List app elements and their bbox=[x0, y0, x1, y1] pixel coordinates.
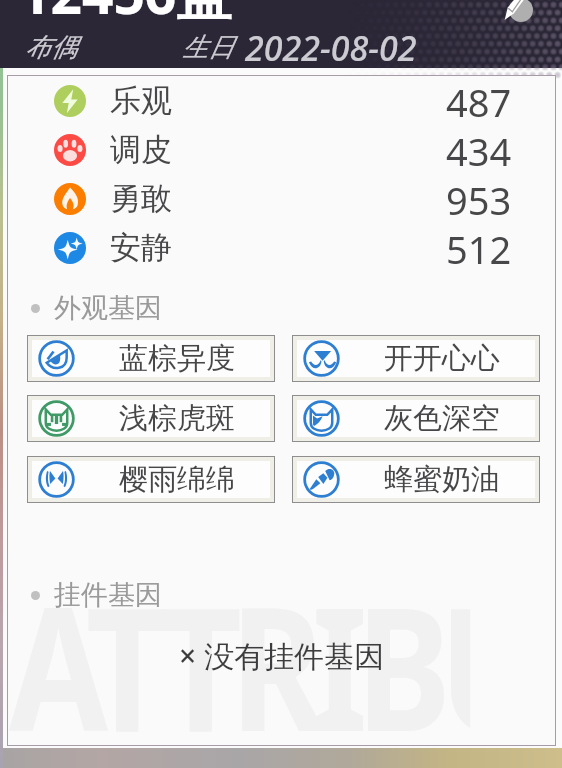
staticText: 外观基因 bbox=[54, 291, 162, 325]
staticText: 953 bbox=[446, 174, 512, 223]
button[interactable]: 樱雨绵绵 bbox=[32, 461, 270, 498]
staticText: 434 bbox=[446, 125, 512, 174]
staticText: 生日 bbox=[182, 31, 234, 64]
staticText: 调皮 bbox=[110, 130, 172, 169]
button[interactable]: 灰色深空 bbox=[297, 400, 535, 437]
staticText: 蜂蜜奶油 bbox=[384, 461, 500, 498]
button[interactable]: Edit bbox=[509, 0, 533, 22]
staticText: ATTRIBUTE bbox=[9, 549, 470, 768]
button[interactable]: 乐观 bbox=[7, 76, 556, 125]
button[interactable]: 蓝棕异度 bbox=[32, 340, 270, 377]
staticText: 安静 bbox=[110, 228, 172, 267]
staticText: 樱雨绵绵 bbox=[119, 461, 235, 498]
staticText: 512 bbox=[446, 223, 512, 272]
staticText: 浅棕虎斑 bbox=[119, 400, 235, 437]
staticText: 12456蓝 bbox=[19, 0, 232, 23]
button[interactable]: 蜂蜜奶油 bbox=[297, 461, 535, 498]
button[interactable]: 调皮 bbox=[7, 125, 556, 174]
button[interactable]: 安静 bbox=[7, 223, 556, 272]
button[interactable]: 勇敢 bbox=[7, 174, 556, 223]
staticText: 勇敢 bbox=[110, 179, 172, 218]
button[interactable]: 浅棕虎斑 bbox=[32, 400, 270, 437]
button[interactable]: 开开心心 bbox=[297, 340, 535, 377]
staticText: 挂件基因 bbox=[54, 578, 162, 612]
staticText: 开开心心 bbox=[384, 340, 500, 377]
staticText: 灰色深空 bbox=[384, 400, 500, 437]
staticText: 487 bbox=[446, 76, 512, 125]
staticText: 乐观 bbox=[110, 81, 172, 120]
staticText: 布偶 bbox=[25, 31, 77, 64]
staticText: 蓝棕异度 bbox=[119, 340, 235, 377]
staticText: × 没有挂件基因 bbox=[7, 635, 556, 676]
staticText: 2022-08-02 bbox=[245, 25, 417, 71]
